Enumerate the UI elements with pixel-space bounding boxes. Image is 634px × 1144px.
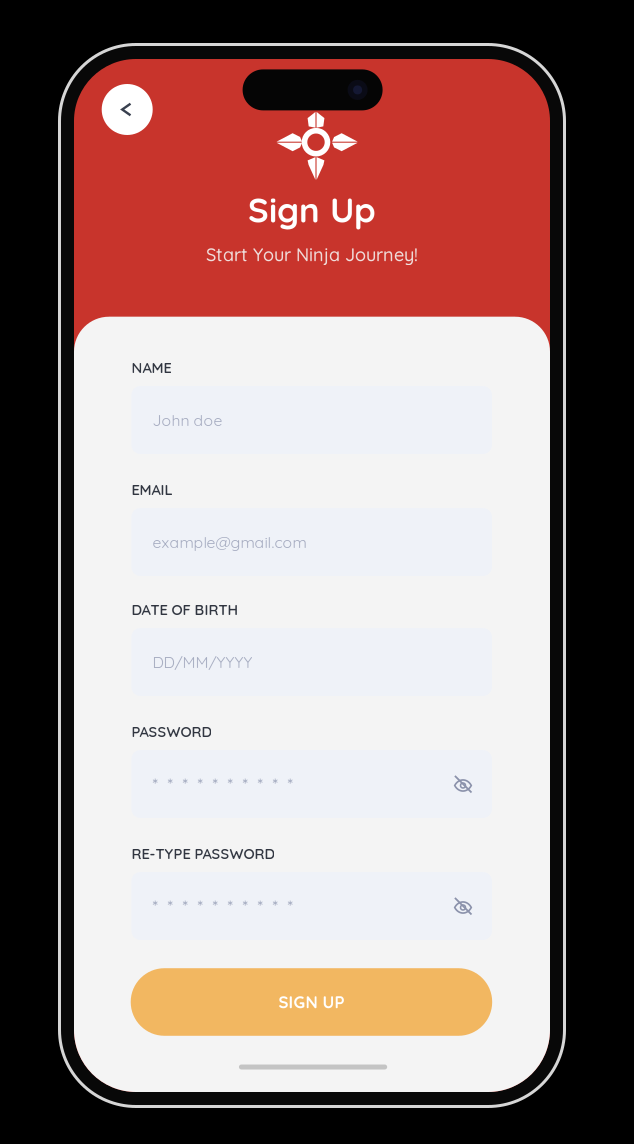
button[interactable]: Show password <box>434 750 492 818</box>
button[interactable]: SIGN UP <box>131 968 492 1036</box>
staticText: * * * * * * * * * * <box>152 773 292 795</box>
staticText: John doe <box>152 410 222 430</box>
staticText: * * * * * * * * * * <box>152 895 292 917</box>
staticText: Sign Up <box>248 188 376 231</box>
staticText: DATE OF BIRTH <box>131 600 238 619</box>
staticText: DD/MM/YYYY <box>152 652 252 672</box>
staticText: NAME <box>131 358 171 377</box>
staticText: PASSWORD <box>131 722 212 741</box>
staticText: example@gmail.com <box>152 532 306 552</box>
button[interactable]: Show password <box>434 872 492 940</box>
button[interactable]: Back <box>102 84 153 135</box>
staticText: Start Your Ninja Journey! <box>206 243 418 266</box>
staticText: RE-TYPE PASSWORD <box>131 844 275 863</box>
staticText: EMAIL <box>131 480 172 499</box>
staticText: SIGN UP <box>278 992 344 1012</box>
